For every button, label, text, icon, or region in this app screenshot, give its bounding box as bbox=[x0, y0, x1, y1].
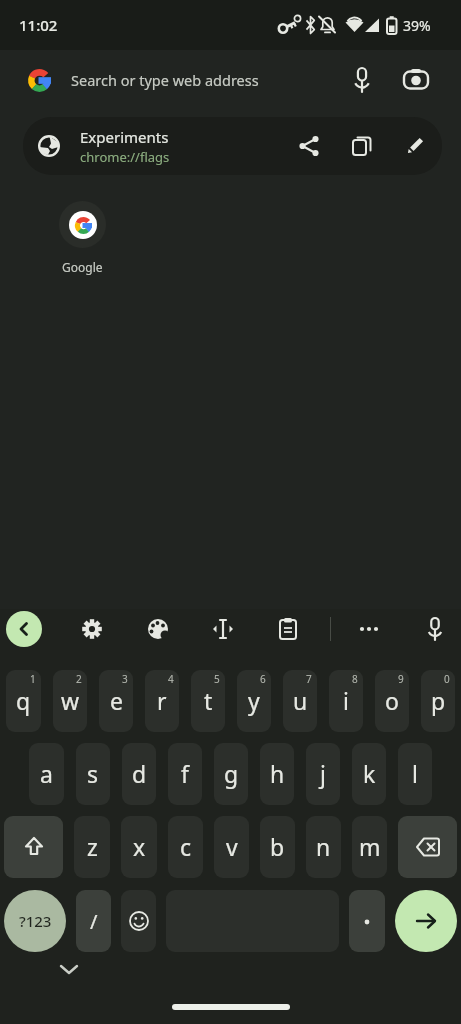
button[interactable]: w bbox=[53, 670, 87, 732]
staticText: / bbox=[90, 908, 98, 935]
staticText: j bbox=[320, 758, 326, 789]
button[interactable]: p bbox=[421, 670, 455, 732]
button[interactable]: x bbox=[121, 816, 157, 878]
staticText: 6 bbox=[260, 672, 266, 686]
button[interactable]: f bbox=[168, 743, 202, 805]
staticText: s bbox=[87, 758, 99, 789]
staticText: e bbox=[110, 685, 123, 716]
staticText: q bbox=[16, 685, 31, 716]
staticText: chrome://flags bbox=[80, 148, 170, 166]
staticText: 8 bbox=[352, 672, 358, 686]
staticText: c bbox=[180, 831, 192, 862]
staticText: b bbox=[270, 831, 285, 862]
button[interactable] bbox=[417, 611, 453, 647]
staticText: v bbox=[226, 831, 238, 862]
staticText: 3 bbox=[122, 672, 128, 686]
button[interactable]: n bbox=[306, 816, 341, 878]
button[interactable] bbox=[74, 611, 110, 647]
button[interactable]: k bbox=[352, 743, 386, 805]
button[interactable]: Experiments bbox=[23, 117, 442, 175]
staticText: 2 bbox=[76, 672, 82, 686]
button[interactable]: m bbox=[352, 816, 387, 878]
button[interactable]: y bbox=[237, 670, 271, 732]
staticText: 11:02 bbox=[19, 15, 58, 35]
button[interactable] bbox=[6, 611, 42, 647]
button[interactable] bbox=[205, 611, 241, 647]
button[interactable]: s bbox=[76, 743, 110, 805]
button[interactable]: i bbox=[329, 670, 363, 732]
button[interactable]: a bbox=[29, 743, 64, 805]
staticText: Experiments bbox=[80, 127, 169, 147]
button[interactable]: e bbox=[99, 670, 133, 732]
button[interactable] bbox=[121, 890, 156, 952]
button[interactable] bbox=[289, 126, 329, 166]
staticText: h bbox=[270, 758, 285, 789]
staticText: f bbox=[181, 758, 189, 789]
button[interactable]: v bbox=[214, 816, 249, 878]
staticText: Search or type web address bbox=[71, 70, 259, 90]
button[interactable]: h bbox=[260, 743, 294, 805]
button[interactable]: z bbox=[74, 816, 110, 878]
staticText: i bbox=[343, 685, 349, 716]
button[interactable] bbox=[396, 60, 436, 100]
staticText: Google bbox=[62, 259, 103, 275]
staticText: m bbox=[359, 831, 381, 862]
button[interactable] bbox=[395, 126, 435, 166]
button[interactable] bbox=[342, 60, 382, 100]
staticText: 7 bbox=[306, 672, 312, 686]
staticText: 5 bbox=[214, 672, 220, 686]
staticText: l bbox=[412, 758, 418, 789]
staticText: z bbox=[87, 831, 98, 862]
button[interactable]: g bbox=[214, 743, 248, 805]
button[interactable]: o bbox=[375, 670, 409, 732]
staticText: k bbox=[363, 758, 376, 789]
button[interactable]: c bbox=[168, 816, 203, 878]
button[interactable]: d bbox=[122, 743, 156, 805]
button[interactable] bbox=[270, 611, 306, 647]
button[interactable]: l bbox=[398, 743, 432, 805]
staticText: p bbox=[431, 685, 446, 716]
button[interactable]: b bbox=[260, 816, 295, 878]
staticText: ?123 bbox=[19, 911, 52, 931]
staticText: u bbox=[293, 685, 308, 716]
button[interactable] bbox=[342, 126, 382, 166]
staticText: y bbox=[248, 685, 260, 716]
staticText: 9 bbox=[398, 672, 404, 686]
button[interactable]: q bbox=[6, 670, 41, 732]
button[interactable]: u bbox=[283, 670, 317, 732]
staticText: 1 bbox=[30, 672, 36, 686]
button[interactable]: Search or type web address bbox=[0, 50, 461, 110]
button[interactable]: ?123 bbox=[4, 890, 66, 952]
staticText: 0 bbox=[444, 672, 450, 686]
staticText: n bbox=[316, 831, 331, 862]
staticText: 39% bbox=[403, 16, 431, 35]
button[interactable] bbox=[349, 890, 385, 952]
staticText: w bbox=[61, 685, 80, 716]
button[interactable]: j bbox=[306, 743, 340, 805]
button[interactable] bbox=[140, 611, 176, 647]
staticText: t bbox=[204, 685, 213, 716]
button[interactable]: r bbox=[145, 670, 179, 732]
staticText: r bbox=[157, 685, 167, 716]
staticText: x bbox=[133, 831, 146, 862]
staticText: g bbox=[224, 758, 239, 789]
staticText: o bbox=[385, 685, 399, 716]
button[interactable] bbox=[395, 890, 457, 952]
button[interactable]: t bbox=[191, 670, 225, 732]
staticText: d bbox=[132, 758, 147, 789]
button[interactable] bbox=[351, 611, 387, 647]
button[interactable] bbox=[4, 816, 63, 878]
staticText: 4 bbox=[168, 672, 174, 686]
staticText: a bbox=[40, 758, 53, 789]
button[interactable] bbox=[398, 816, 457, 878]
button[interactable]: / bbox=[76, 890, 111, 952]
button[interactable]: Google bbox=[52, 201, 113, 275]
